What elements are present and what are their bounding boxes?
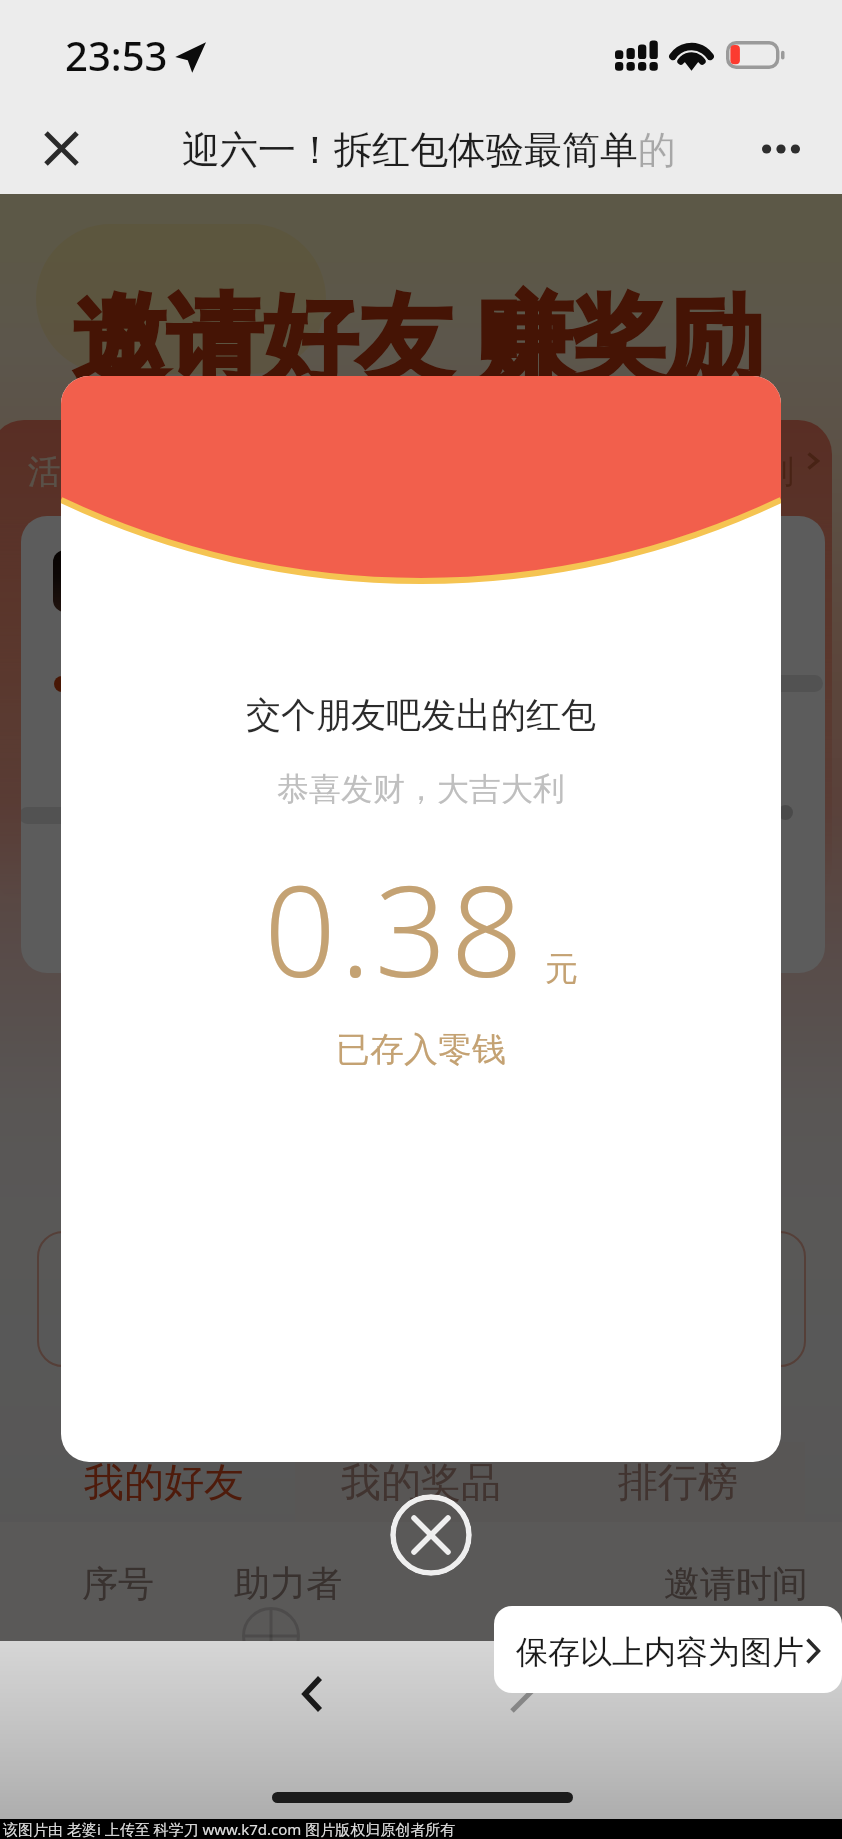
staticText: 助力者	[234, 1561, 342, 1606]
button[interactable]: 保存以上内容为图片	[494, 1606, 842, 1693]
staticText: 0.38	[264, 842, 527, 1014]
staticText: 排行榜	[618, 1457, 738, 1507]
staticText: 活动规则	[28, 451, 160, 493]
button[interactable]: Close red packet	[390, 1494, 472, 1576]
staticText: 交个朋友吧发出的红包	[246, 693, 596, 737]
button[interactable]: Close page	[26, 113, 96, 183]
staticText: 迎六一！拆红包体验最简单	[182, 126, 638, 174]
staticText: 23:53	[65, 28, 168, 82]
button[interactable]: 我的奖品	[292, 1442, 550, 1522]
staticText: 我的好友	[84, 1457, 244, 1507]
staticText: 该图片由 老婆i 上传至 科学刀 www.k7d.com 图片版权归原创者所有	[3, 1819, 456, 1839]
staticText: 已存入零钱	[336, 1028, 506, 1071]
button[interactable]: 排行榜	[549, 1442, 807, 1522]
staticText: 序号	[82, 1561, 154, 1606]
staticText: 查看规则	[662, 451, 794, 493]
staticText: 元	[545, 948, 578, 990]
staticText: 的	[638, 126, 676, 174]
staticText: 恭喜发财，大吉大利	[277, 769, 565, 809]
staticText: 邀请好友 赚奖励	[72, 270, 762, 400]
staticText: 我的奖品	[341, 1457, 501, 1507]
staticText: 保存以上内容为图片	[516, 1632, 804, 1672]
button[interactable]: More options	[746, 114, 816, 184]
staticText: 邀请时间	[664, 1561, 808, 1606]
button[interactable]: Back	[262, 1644, 362, 1744]
button[interactable]: 我的好友	[35, 1442, 293, 1522]
